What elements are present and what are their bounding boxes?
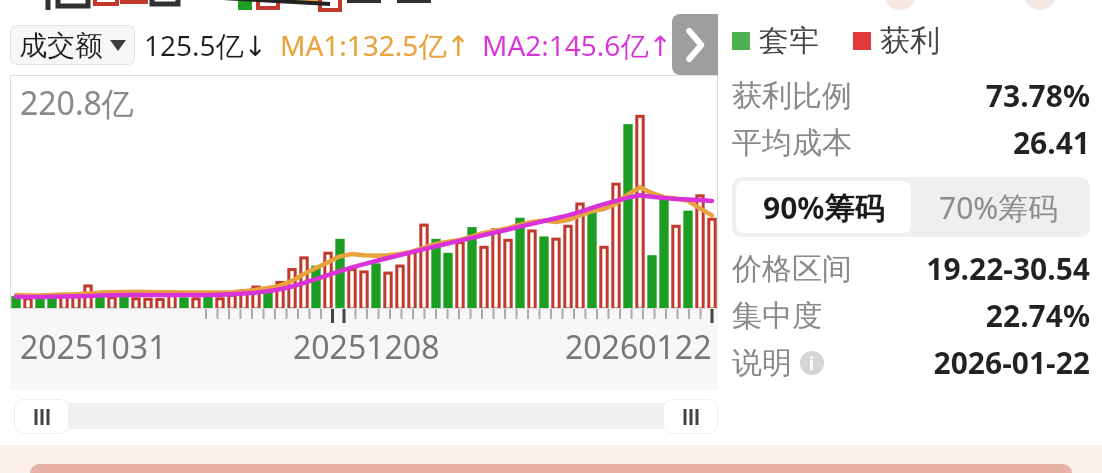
staticText: MA2:145.6亿↑	[482, 26, 672, 64]
button[interactable]: 下一个指标	[672, 14, 718, 75]
staticText: MA1:132.5亿↑	[280, 26, 470, 64]
staticText: 70%筹码	[939, 187, 1059, 228]
staticText: 获利	[880, 22, 940, 60]
button[interactable]: 90%筹码	[736, 181, 911, 233]
staticText: 22.74%	[822, 295, 1090, 336]
staticText: 套牢	[759, 22, 819, 60]
staticText: 90%筹码	[763, 187, 885, 228]
staticText: 26.41	[852, 122, 1090, 163]
staticText: 20251031	[20, 325, 167, 369]
staticText: 平均成本	[732, 124, 852, 162]
staticText: 220.8亿	[20, 81, 134, 125]
button[interactable]: 说明	[732, 344, 824, 382]
staticText: 19.22-30.54	[852, 248, 1090, 289]
staticText: 125.5亿↓	[144, 26, 268, 64]
button[interactable]: 70%筹码	[911, 181, 1086, 233]
staticText: i	[809, 352, 815, 375]
staticText: 2026-01-22	[824, 342, 1090, 383]
staticText: 73.78%	[852, 75, 1090, 116]
staticText: 20251208	[293, 325, 440, 369]
staticText: 成交额	[19, 28, 103, 63]
staticText: 价格区间	[732, 250, 852, 288]
button[interactable]: 右侧范围	[663, 399, 718, 434]
staticText: 获利比例	[732, 77, 852, 115]
button[interactable]: 左侧范围	[14, 399, 69, 434]
staticText: 集中度	[732, 297, 822, 335]
button[interactable]: 成交额	[10, 25, 135, 65]
staticText: 20260122	[565, 325, 712, 369]
staticText: 说明	[732, 344, 792, 382]
